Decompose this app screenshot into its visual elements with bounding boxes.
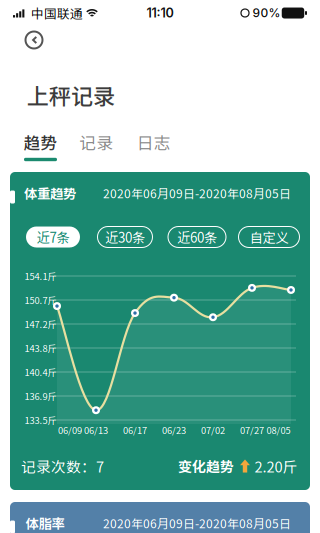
staticText: 记录次数：7 xyxy=(21,455,104,477)
staticText: 近60条 xyxy=(177,227,217,247)
staticText: 06/13 xyxy=(84,423,108,437)
staticText: 近7条 xyxy=(36,227,69,247)
staticText: 08/05 xyxy=(266,423,290,437)
staticText: 90% xyxy=(252,6,280,20)
button[interactable]: 记录 xyxy=(69,120,123,170)
staticText: 06/09 xyxy=(58,423,82,437)
button[interactable]: 近7条 xyxy=(21,222,85,252)
staticText: 136.9斤 xyxy=(24,389,56,403)
button[interactable]: 近30条 xyxy=(92,222,157,252)
staticText: 150.7斤 xyxy=(24,293,56,307)
staticText: 133.5斤 xyxy=(24,413,56,427)
staticText: 记录 xyxy=(79,130,113,154)
staticText: 体脂率 xyxy=(25,513,64,533)
staticText: 中国联通 xyxy=(31,4,83,22)
staticText: 2.20斤 xyxy=(254,455,297,477)
staticText: 2020年06月09日-2020年08月05日 xyxy=(103,514,291,532)
staticText: 140.4斤 xyxy=(24,365,56,379)
staticText: 154.1斤 xyxy=(24,269,56,283)
staticText: 07/02 xyxy=(201,423,225,437)
staticText: 趋势 xyxy=(23,130,57,154)
staticText: 变化趋势 xyxy=(178,456,234,476)
staticText: 体重趋势 xyxy=(24,183,76,203)
staticText: 上秤记录 xyxy=(27,79,115,111)
staticText: 自定义 xyxy=(249,227,288,247)
button[interactable]: Back xyxy=(15,21,53,59)
staticText: 2020年06月09日-2020年08月05日 xyxy=(103,184,291,202)
staticText: 11:10 xyxy=(146,5,173,21)
button[interactable]: 日志 xyxy=(126,120,180,170)
staticText: 147.2斤 xyxy=(24,317,56,331)
button[interactable]: 近60条 xyxy=(163,222,231,252)
staticText: 日志 xyxy=(136,130,170,154)
staticText: 07/27 xyxy=(240,423,264,437)
button[interactable]: 趋势 xyxy=(13,120,67,170)
staticText: 143.8斤 xyxy=(24,341,56,355)
staticText: 近30条 xyxy=(105,227,145,247)
staticText: 06/17 xyxy=(123,423,147,437)
staticText: 06/23 xyxy=(162,423,186,437)
button[interactable]: 自定义 xyxy=(233,222,304,252)
